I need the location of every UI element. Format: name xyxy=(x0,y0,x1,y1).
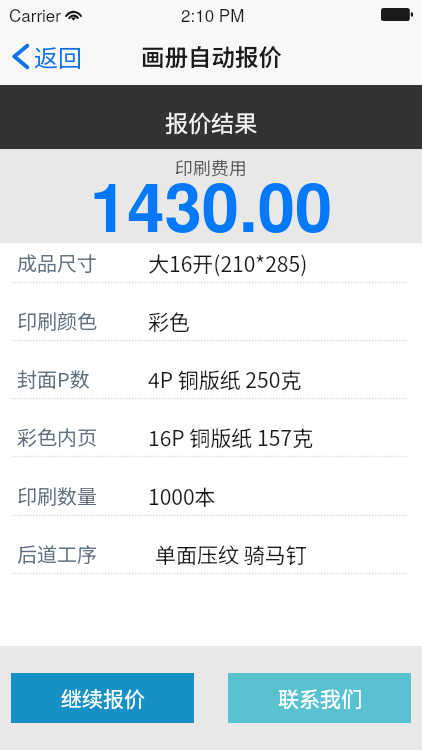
staticText: 彩色 xyxy=(148,306,190,336)
button[interactable]: 封面P数 xyxy=(0,341,422,399)
staticText: 大16开(210*285) xyxy=(148,248,308,278)
other: Wi-Fi xyxy=(65,7,82,20)
staticText: 1430.00 xyxy=(90,157,333,251)
staticText: 16P 铜版纸 157克 xyxy=(148,422,313,452)
staticText: Carrier xyxy=(9,2,61,26)
staticText: 继续报价 xyxy=(61,683,145,713)
staticText: 彩色内页 xyxy=(17,422,97,451)
button[interactable]: 彩色内页 xyxy=(0,399,422,457)
staticText: 2:10 PM xyxy=(181,2,245,26)
staticText: 报价结果 xyxy=(165,105,257,138)
staticText: 封面P数 xyxy=(17,364,90,393)
staticText: 4P 铜版纸 250克 xyxy=(148,364,302,394)
staticText: 联系我们 xyxy=(278,683,362,713)
staticText: 印刷数量 xyxy=(17,481,97,510)
button[interactable]: 成品尺寸 xyxy=(0,243,422,283)
staticText: 印刷颜色 xyxy=(17,306,97,335)
button[interactable]: 返回 xyxy=(0,33,92,80)
button[interactable]: 继续报价 xyxy=(11,673,194,723)
staticText: 成品尺寸 xyxy=(17,248,97,277)
staticText: 画册自动报价 xyxy=(141,39,282,73)
button[interactable]: 印刷数量 xyxy=(0,457,422,516)
button[interactable]: 联系我们 xyxy=(228,673,411,723)
staticText: 单面压纹 骑马钉 xyxy=(155,539,307,569)
button[interactable]: 后道工序 xyxy=(0,516,422,574)
staticText: 1000本 xyxy=(148,481,216,511)
staticText: 后道工序 xyxy=(17,539,97,568)
button[interactable]: 印刷颜色 xyxy=(0,283,422,341)
staticText: 返回 xyxy=(34,39,82,74)
staticText: 印刷费用 xyxy=(175,154,247,180)
